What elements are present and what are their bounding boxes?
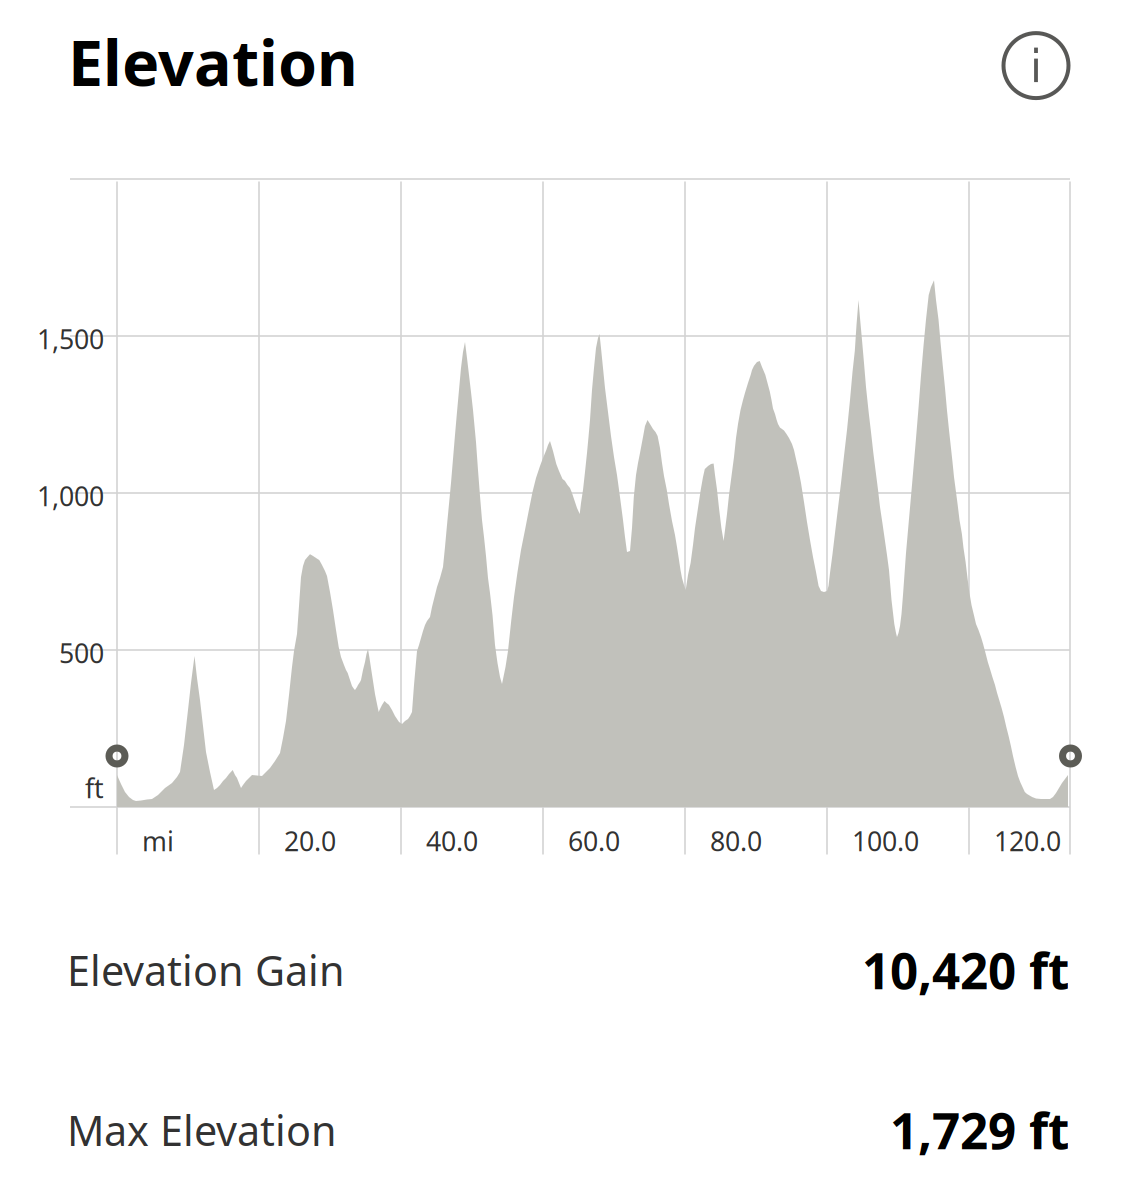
staticText: mi [142, 823, 174, 859]
staticText: 60.0 [568, 823, 620, 859]
staticText: 10,420 ft [862, 937, 1069, 1003]
staticText: 100.0 [852, 823, 919, 859]
staticText: 1,729 ft [890, 1097, 1069, 1163]
button[interactable]: About elevation [994, 24, 1078, 108]
staticText: 120.0 [994, 823, 1061, 859]
staticText: ft [85, 770, 104, 806]
staticText: 80.0 [710, 823, 762, 859]
staticText: Elevation Gain [67, 943, 345, 997]
staticText: 500 [59, 635, 104, 671]
staticText: 20.0 [284, 823, 336, 859]
staticText: 40.0 [426, 823, 478, 859]
staticText: Elevation [68, 20, 358, 103]
staticText: Max Elevation [67, 1103, 337, 1157]
staticText: 1,500 [37, 321, 104, 357]
staticText: 1,000 [37, 478, 104, 514]
